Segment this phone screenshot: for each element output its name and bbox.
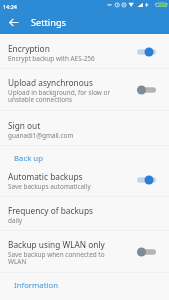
button[interactable]: Encryption — [0, 36, 169, 68]
staticText: Sign out — [8, 120, 41, 131]
staticText: Frequency of backups — [8, 205, 94, 216]
staticText: Encrypt backup with AES-256 — [8, 54, 95, 63]
button[interactable]: Toggle — [135, 174, 156, 186]
button[interactable]: Backup using WLAN only — [0, 231, 169, 272]
button[interactable]: Toggle — [135, 246, 156, 258]
staticText: 14:24 — [3, 3, 17, 10]
staticText: Settings — [31, 16, 66, 29]
staticText: Save backup when connected to WLAN — [8, 250, 105, 266]
staticText: Backup using WLAN only — [8, 239, 105, 250]
staticText: Save backups automatically — [8, 182, 91, 191]
button[interactable]: Frequency of backups — [0, 197, 169, 230]
button[interactable]: Toggle — [135, 46, 156, 58]
button[interactable]: Upload asynchronous — [0, 69, 169, 110]
staticText: Upload asynchronous — [8, 77, 93, 88]
button[interactable]: Sign out — [0, 111, 169, 145]
staticText: Automatic backups — [8, 171, 83, 182]
staticText: daily — [8, 216, 23, 225]
staticText: Encryption — [8, 43, 50, 54]
button[interactable]: Automatic backups — [0, 163, 169, 196]
staticText: Information — [14, 280, 59, 291]
button[interactable]: Toggle — [135, 84, 156, 96]
staticText: Upload in background, for slow or unstab… — [8, 88, 111, 104]
button[interactable]: Back — [0, 11, 26, 34]
staticText: guanadi1@gmail.com — [8, 131, 74, 140]
staticText: Back up — [14, 153, 43, 164]
